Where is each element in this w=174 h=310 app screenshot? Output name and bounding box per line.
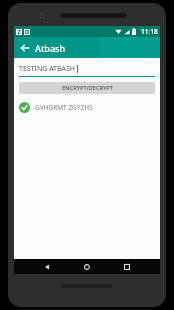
staticText: TESTING ATBASH: [19, 64, 76, 74]
button[interactable]: Home: [80, 260, 94, 274]
button[interactable]: Back: [40, 260, 54, 274]
button[interactable]: TESTING ATBASH: [19, 64, 155, 77]
button[interactable]: Navigate up: [14, 37, 35, 58]
button[interactable]: GVHGRMT ZGYZHS: [19, 102, 155, 113]
button[interactable]: ENCRYPT/DECRYPT: [19, 82, 155, 94]
staticText: GVHGRMT ZGYZHS: [35, 103, 93, 112]
staticText: Atbash: [35, 42, 66, 54]
button[interactable]: Recent apps: [120, 260, 134, 274]
staticText: ENCRYPT/DECRYPT: [62, 84, 113, 92]
staticText: 11:18: [141, 27, 158, 36]
